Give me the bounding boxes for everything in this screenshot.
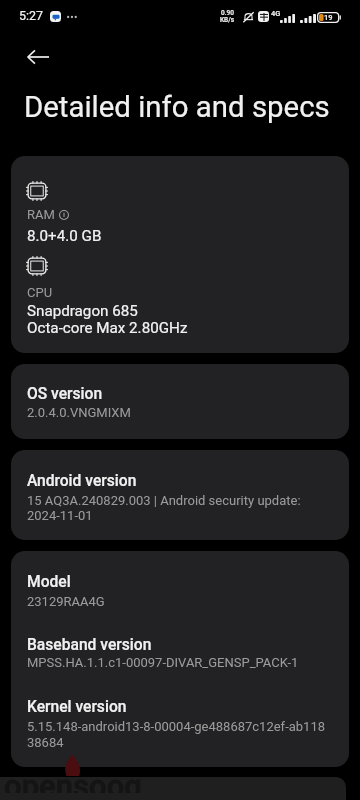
staticText: 5.15.148-android13-8-00004-ge488687c12ef…	[27, 719, 343, 734]
staticText: Android version	[27, 472, 137, 490]
staticText: 4G	[271, 10, 281, 18]
staticText: RAM	[27, 207, 55, 222]
staticText: 19	[324, 14, 333, 22]
staticText: 15 AQ3A.240829.003 | Android security up…	[27, 493, 343, 523]
staticText: Kernel version	[27, 698, 127, 716]
button[interactable]: Model	[11, 551, 349, 767]
staticText: 8.0+4.0 GB	[27, 227, 102, 245]
staticText: KB/s	[220, 16, 235, 23]
staticText: 5:27	[19, 9, 44, 23]
staticText: opensooq	[4, 777, 142, 793]
staticText: CPU	[27, 285, 53, 300]
staticText: 38684	[27, 735, 343, 750]
staticText: Baseband version	[27, 636, 152, 654]
staticText: 0.90	[221, 9, 234, 16]
staticText: Detailed info and specs	[24, 90, 330, 124]
button[interactable]: OS version	[11, 364, 349, 439]
staticText: Snapdragon 685	[27, 302, 138, 320]
staticText: 2.0.4.0.VNGMIXM	[27, 405, 343, 420]
staticText: Model	[27, 573, 71, 591]
staticText: Octa-core Max 2.80GHz	[27, 319, 188, 337]
staticText: 23129RAA4G	[27, 594, 343, 609]
button[interactable]: Back	[10, 37, 65, 77]
staticText: OS version	[27, 385, 103, 403]
button[interactable]: Android version	[11, 450, 349, 540]
staticText: MPSS.HA.1.1.c1-00097-DIVAR_GENSP_PACK-1	[27, 655, 343, 670]
button[interactable]: RAM	[11, 156, 349, 353]
